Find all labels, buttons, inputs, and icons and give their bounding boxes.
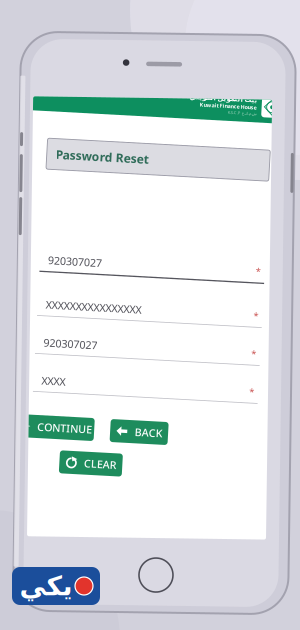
staticText: Password Reset (47, 151, 140, 167)
staticText: ش.م.ك.ع K.S.C.P (216, 106, 245, 111)
staticText: بيت التمويل الكويتي (177, 91, 245, 99)
staticText: XXXXXXXXXXXXXXXX (45, 303, 141, 317)
staticText: BACK (141, 425, 169, 440)
button[interactable]: BACK (116, 421, 174, 444)
button[interactable]: CONTINUE (22, 421, 100, 444)
staticText: CONTINUE (43, 425, 98, 440)
staticText: يكي (19, 571, 72, 601)
button[interactable]: CLEAR (67, 455, 130, 478)
staticText: 920307027 (45, 341, 99, 355)
staticText: * (253, 304, 258, 316)
staticText: * (253, 342, 258, 354)
staticText: CLEAR (92, 459, 125, 474)
staticText: * (253, 380, 258, 392)
staticText: XXXX (45, 379, 69, 393)
staticText: Kuwait Finance House (188, 99, 245, 106)
staticText: * (253, 259, 258, 272)
staticText: 920307027 (45, 258, 99, 273)
